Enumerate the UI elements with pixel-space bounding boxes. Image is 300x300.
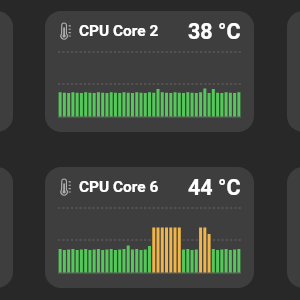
staticText: CPU Core 2 [79,22,159,40]
staticText: 38 °C [188,19,241,44]
button[interactable]: CPU Core 2 [45,11,254,132]
staticText: 44 °C [188,175,241,200]
button[interactable]: CPU Core 6 [45,167,254,288]
staticText: CPU Core 6 [79,178,159,196]
